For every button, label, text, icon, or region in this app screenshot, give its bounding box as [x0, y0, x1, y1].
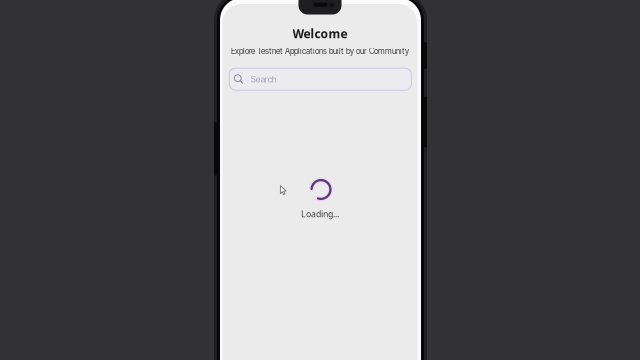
button[interactable]: Search — [229, 68, 411, 90]
staticText: Explore Testnet Applications built by ou… — [231, 46, 409, 56]
staticText: Search — [251, 74, 277, 85]
staticText: Loading... — [301, 208, 339, 220]
staticText: Welcome — [292, 25, 347, 42]
